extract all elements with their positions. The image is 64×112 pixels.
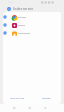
staticText: Se abre con esto (13, 7, 34, 11)
staticText: Chrome (18, 16, 26, 19)
button[interactable]: SIEMPRE (32, 93, 61, 104)
button[interactable]: SOLO UNA VEZ (3, 93, 32, 104)
button[interactable]: Galería (3, 21, 61, 29)
button[interactable]: Mis archivos (3, 29, 61, 37)
staticText: SIEMPRE (42, 97, 51, 100)
staticText: Mis archivos (18, 32, 31, 35)
staticText: Galería (18, 24, 25, 27)
staticText: SOLO UNA VEZ (10, 97, 25, 100)
button[interactable]: Chrome (3, 13, 61, 21)
